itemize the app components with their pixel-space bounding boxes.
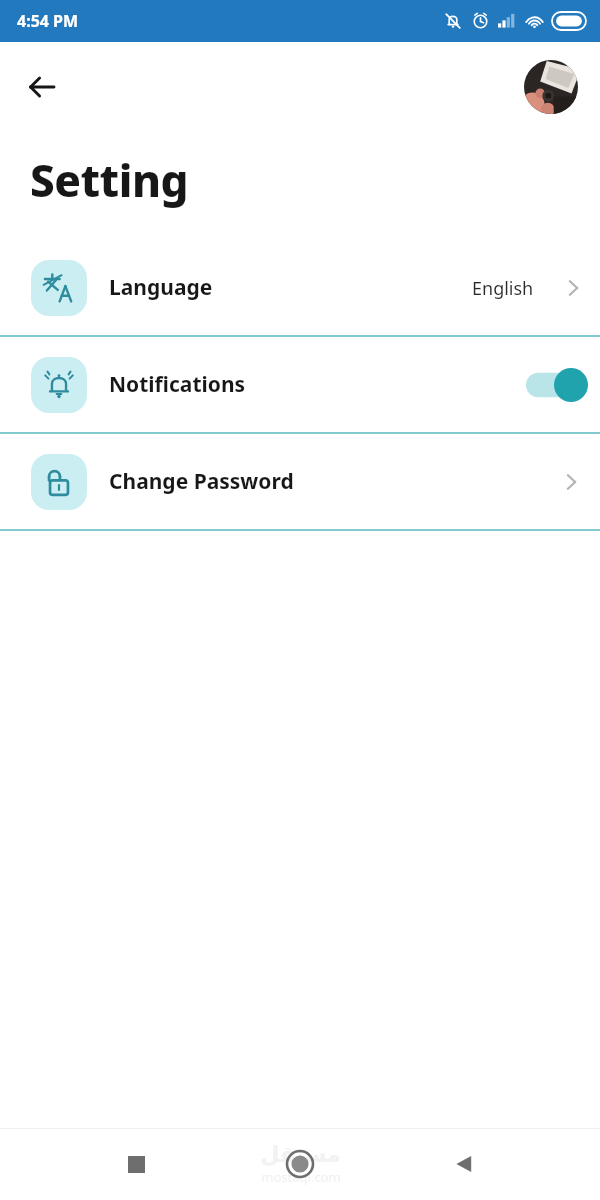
staticText: 4:54 PM — [17, 10, 79, 32]
button[interactable]: Language — [0, 240, 600, 335]
button[interactable]: Back — [436, 1136, 492, 1192]
button[interactable]: Recent apps — [108, 1136, 164, 1192]
staticText: مستقل — [260, 1142, 341, 1168]
staticText: Language — [109, 273, 213, 302]
button[interactable]: Change Password — [0, 434, 600, 529]
staticText: Setting — [30, 150, 188, 210]
staticText: mostaql.com — [261, 1168, 341, 1186]
staticText: Change Password — [109, 467, 294, 496]
button[interactable]: Profile — [524, 60, 578, 114]
staticText: English — [472, 276, 534, 301]
staticText: Notifications — [109, 370, 246, 399]
button[interactable]: Back — [16, 61, 68, 113]
button[interactable]: Notifications toggle — [526, 368, 588, 402]
button[interactable]: Home — [272, 1136, 328, 1192]
button[interactable]: Notifications — [0, 337, 600, 432]
